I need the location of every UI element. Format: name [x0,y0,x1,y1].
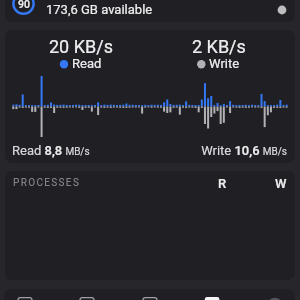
staticText: Read 8,8 MB/s [12,143,90,158]
staticText: 173,6 GB available [46,2,153,17]
button[interactable]: Apps [65,289,109,300]
staticText: 20 KB/s [49,36,113,57]
staticText: W [275,176,287,191]
staticText: Write 10,6 MB/s [167,143,287,158]
staticText: PROCESSES [13,177,81,189]
staticText: 2 KB/s [192,36,246,57]
button[interactable]: Network [128,289,172,300]
button[interactable]: 20 KB/s [5,30,295,163]
button[interactable]: 90 [5,0,295,22]
staticText: 90 [18,0,30,10]
button[interactable]: Disk activity [190,289,234,300]
staticText: Write [209,56,240,71]
staticText: Read [72,56,102,71]
staticText: R [218,176,227,191]
button[interactable]: Storage [4,289,47,300]
button[interactable]: Settings [253,289,295,300]
